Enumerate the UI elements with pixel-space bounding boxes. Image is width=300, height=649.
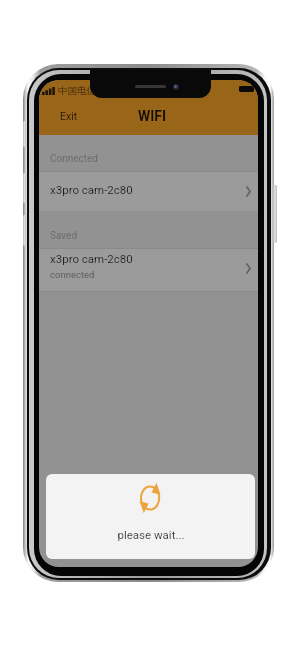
- button[interactable]: x3pro cam-2c80: [39, 248, 258, 291]
- staticText: connected: [50, 269, 95, 280]
- staticText: please wait...: [117, 528, 185, 541]
- staticText: Saved: [50, 230, 78, 242]
- button[interactable]: x3pro cam-2c80: [39, 171, 258, 212]
- staticText: x3pro cam-2c80: [50, 252, 133, 265]
- other: Refreshing: [140, 483, 161, 513]
- button[interactable]: Exit: [51, 102, 87, 130]
- staticText: 中国电信: [58, 85, 96, 97]
- staticText: Connected: [50, 153, 99, 165]
- staticText: WIFI: [138, 108, 167, 124]
- staticText: Exit: [60, 110, 78, 122]
- staticText: x3pro cam-2c80: [50, 183, 133, 196]
